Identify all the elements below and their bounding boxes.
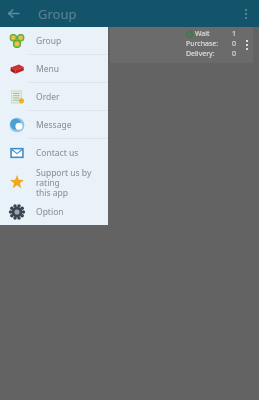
staticText: 0 — [232, 39, 237, 49]
staticText: Option — [36, 206, 64, 218]
staticText: Order — [36, 91, 60, 103]
staticText: Group — [36, 35, 62, 47]
staticText: Contact us — [36, 147, 79, 159]
button[interactable]: Back — [0, 0, 27, 27]
staticText: Support us by rating this app — [36, 167, 108, 198]
staticText: Delivery: — [186, 49, 215, 59]
button[interactable]: Message — [0, 111, 108, 138]
button[interactable]: Menu — [0, 55, 108, 82]
staticText: Group — [38, 5, 77, 23]
staticText: 1 — [232, 29, 237, 39]
staticText: Message — [36, 119, 72, 131]
staticText: Purchase: — [186, 39, 219, 49]
button[interactable]: More options — [232, 0, 259, 27]
staticText: Menu — [36, 63, 60, 75]
button[interactable]: Option — [0, 198, 108, 225]
button[interactable]: Group — [0, 27, 108, 54]
staticText: Wait — [195, 29, 210, 39]
button[interactable]: Contact us — [0, 139, 108, 166]
button[interactable]: Order — [0, 83, 108, 110]
button[interactable]: Support us by rating this app — [0, 166, 108, 198]
staticText: 0 — [232, 49, 237, 59]
